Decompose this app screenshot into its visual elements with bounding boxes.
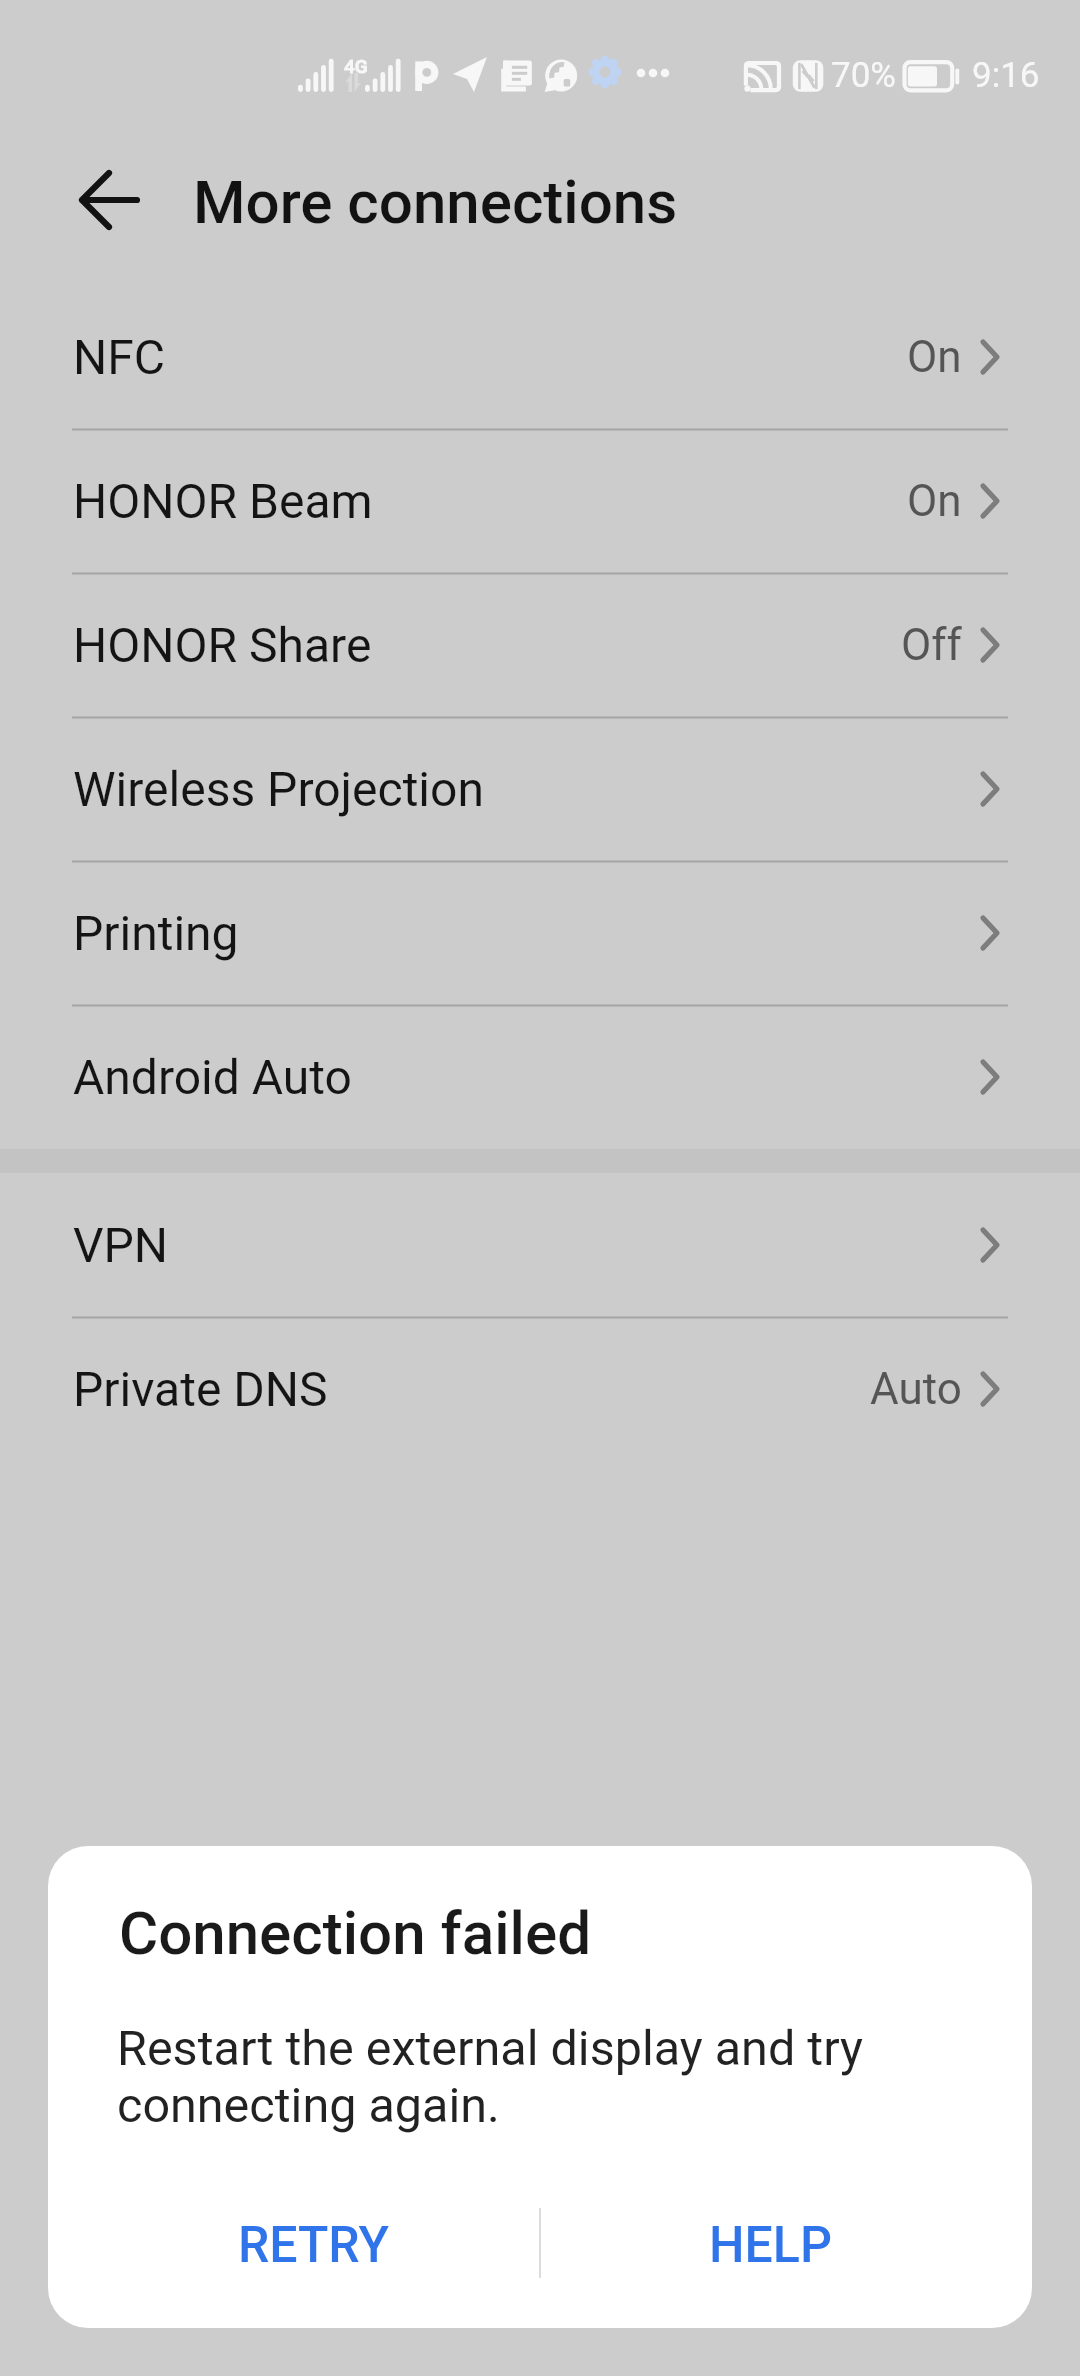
staticText: 9:16 (972, 55, 1040, 96)
staticText: HONOR Share (73, 617, 372, 673)
staticText: On (907, 475, 962, 527)
staticText: Auto (870, 1363, 962, 1415)
staticText: Connection failed (119, 1898, 592, 1968)
staticText: On (907, 331, 962, 383)
button[interactable]: Printing (0, 861, 1080, 1005)
staticText: VPN (73, 1217, 169, 1273)
button[interactable]: RETRY (48, 2168, 540, 2328)
staticText: Android Auto (73, 1049, 352, 1105)
staticText: Off (901, 619, 962, 671)
staticText: RETRY (238, 2216, 389, 2275)
staticText: HELP (709, 2216, 832, 2275)
staticText: Restart the external display and try con… (117, 2020, 917, 2134)
staticText: More connections (193, 167, 678, 237)
staticText: Printing (73, 905, 239, 961)
staticText: Private DNS (73, 1361, 328, 1417)
button[interactable]: Android Auto (0, 1005, 1080, 1149)
staticText: NFC (73, 329, 166, 385)
button[interactable]: VPN (0, 1173, 1080, 1317)
button[interactable]: Wireless Projection (0, 717, 1080, 861)
staticText: Wireless Projection (73, 761, 484, 817)
button[interactable]: NFC (0, 285, 1080, 429)
button[interactable]: HONOR Beam (0, 429, 1080, 573)
button[interactable]: Private DNS (0, 1317, 1080, 1461)
button[interactable]: HELP (540, 2168, 1032, 2328)
staticText: HONOR Beam (73, 473, 373, 529)
staticText: 4G (344, 55, 368, 77)
button[interactable]: Back (54, 155, 150, 251)
button[interactable]: HONOR Share (0, 573, 1080, 717)
staticText: 70% (831, 55, 896, 96)
